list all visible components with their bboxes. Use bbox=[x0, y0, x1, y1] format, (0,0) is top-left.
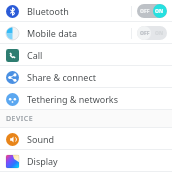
staticText: Call bbox=[27, 49, 167, 61]
staticText: Bluetooth bbox=[27, 5, 131, 17]
staticText: Sound bbox=[27, 133, 167, 145]
button[interactable]: Sound bbox=[0, 128, 172, 150]
button[interactable]: Bluetooth bbox=[0, 0, 172, 22]
staticText: Mobile data bbox=[27, 27, 131, 39]
staticText: ON bbox=[155, 30, 164, 37]
staticText: OFF bbox=[140, 8, 150, 15]
staticText: ON bbox=[155, 8, 164, 15]
staticText: Share & connect bbox=[27, 71, 167, 83]
staticText: Display bbox=[27, 155, 167, 167]
button[interactable]: Share & connect bbox=[0, 66, 172, 88]
staticText: Tethering & networks bbox=[27, 93, 167, 105]
staticText: DEVICE bbox=[6, 114, 34, 124]
button[interactable]: Display bbox=[0, 150, 172, 172]
button[interactable]: Tethering & networks bbox=[0, 88, 172, 110]
staticText: OFF bbox=[140, 30, 150, 37]
button[interactable]: Mobile data bbox=[0, 22, 172, 44]
button[interactable]: Call bbox=[0, 44, 172, 66]
button[interactable]: Toggle off bbox=[137, 26, 167, 40]
button[interactable]: Toggle on bbox=[137, 4, 167, 18]
